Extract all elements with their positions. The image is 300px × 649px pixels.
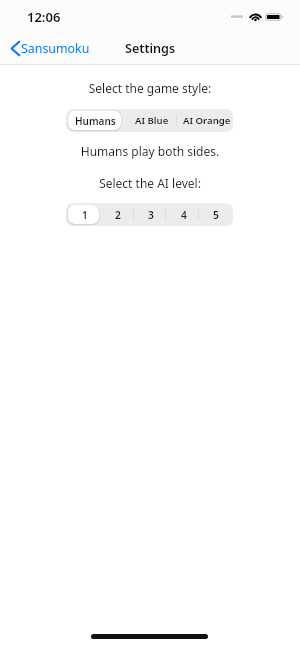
staticText: Humans: [75, 114, 116, 128]
staticText: AI Orange: [183, 114, 231, 127]
button[interactable]: AI Blue: [124, 109, 179, 132]
staticText: 4: [181, 208, 187, 222]
button[interactable]: 5: [200, 203, 231, 226]
button[interactable]: 2: [101, 203, 134, 226]
button[interactable]: Humans: [68, 109, 123, 132]
staticText: 2: [115, 208, 121, 222]
button[interactable]: Back: [10, 32, 90, 65]
button[interactable]: 3: [134, 203, 167, 226]
button[interactable]: 4: [167, 203, 200, 226]
button[interactable]: 1: [68, 203, 101, 226]
button[interactable]: AI Orange: [180, 109, 233, 132]
staticText: 5: [213, 208, 219, 222]
staticText: Select the AI level:: [0, 175, 300, 191]
staticText: Humans play both sides.: [0, 143, 300, 159]
staticText: Select the game style:: [0, 80, 300, 96]
staticText: 12:06: [27, 8, 61, 26]
staticText: 3: [148, 208, 154, 222]
other: Back: [10, 40, 20, 57]
staticText: Sansumoku: [21, 40, 90, 57]
staticText: 1: [82, 208, 88, 222]
staticText: Settings: [125, 40, 176, 57]
staticText: AI Blue: [135, 114, 169, 127]
